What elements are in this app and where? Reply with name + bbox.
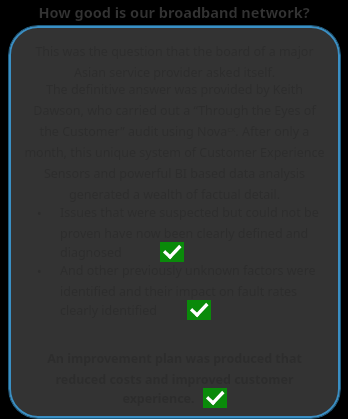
button[interactable]: This was the question that the board of … <box>9 26 340 418</box>
button[interactable]: Confirmed <box>203 388 227 408</box>
button[interactable]: How good is our broadband network? <box>0 0 348 24</box>
button[interactable]: Confirmed <box>187 300 211 320</box>
staticText: How good is our broadband network? <box>38 2 310 22</box>
button[interactable]: Confirmed <box>160 242 184 262</box>
